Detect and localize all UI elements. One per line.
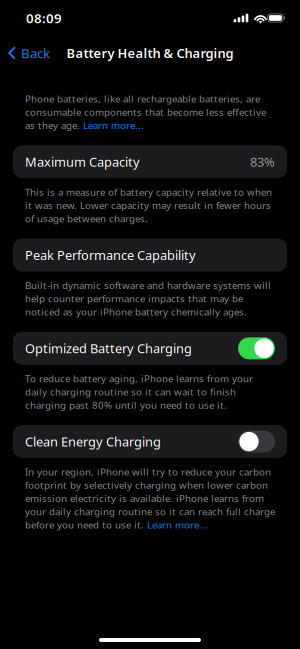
staticText: Back bbox=[21, 44, 50, 62]
staticText: Phone batteries, like all rechargeable b… bbox=[25, 92, 266, 132]
staticText: This is a measure of battery capacity re… bbox=[25, 185, 272, 225]
staticText: Peak Performance Capability bbox=[25, 246, 196, 264]
button[interactable]: Peak Performance Capability bbox=[13, 238, 287, 271]
staticText: Optimized Battery Charging bbox=[25, 340, 192, 357]
staticText: To reduce battery aging, iPhone learns f… bbox=[25, 372, 253, 412]
staticText: Built-in dynamic software and hardware s… bbox=[25, 278, 271, 318]
staticText: In your region, iPhone will try to reduc… bbox=[25, 465, 275, 531]
button[interactable]: Optimized Battery Charging bbox=[13, 332, 287, 365]
staticText: 08:09 bbox=[26, 9, 62, 27]
button[interactable]: Clean Energy Charging bbox=[13, 425, 287, 458]
staticText: 83% bbox=[250, 153, 275, 170]
staticText: Maximum Capacity bbox=[25, 153, 140, 170]
staticText: Clean Energy Charging bbox=[25, 433, 161, 450]
button[interactable]: Maximum Capacity bbox=[13, 145, 287, 178]
staticText: Battery Health & Charging bbox=[66, 44, 233, 62]
button[interactable]: Back bbox=[0, 36, 58, 70]
